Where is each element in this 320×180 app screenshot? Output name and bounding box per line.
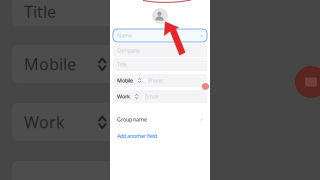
- button[interactable]: Group name: [113, 112, 207, 127]
- button[interactable]: Add another field: [113, 132, 207, 140]
- staticText: Title: [117, 61, 127, 68]
- staticText: Group name: [117, 116, 147, 123]
- staticText: >: [200, 116, 203, 123]
- staticText: Company: [117, 47, 140, 54]
- staticText: Work: [117, 93, 130, 100]
- staticText: Mobile: [117, 77, 133, 84]
- staticText: Title: [24, 1, 56, 22]
- staticText: Phone: [148, 77, 163, 84]
- staticText: x: [200, 32, 203, 39]
- staticText: Add another field: [117, 132, 157, 140]
- staticText: Email: [145, 93, 158, 100]
- staticText: Work: [24, 111, 65, 133]
- staticText: Name: [117, 32, 132, 39]
- staticText: Mobile: [24, 53, 76, 75]
